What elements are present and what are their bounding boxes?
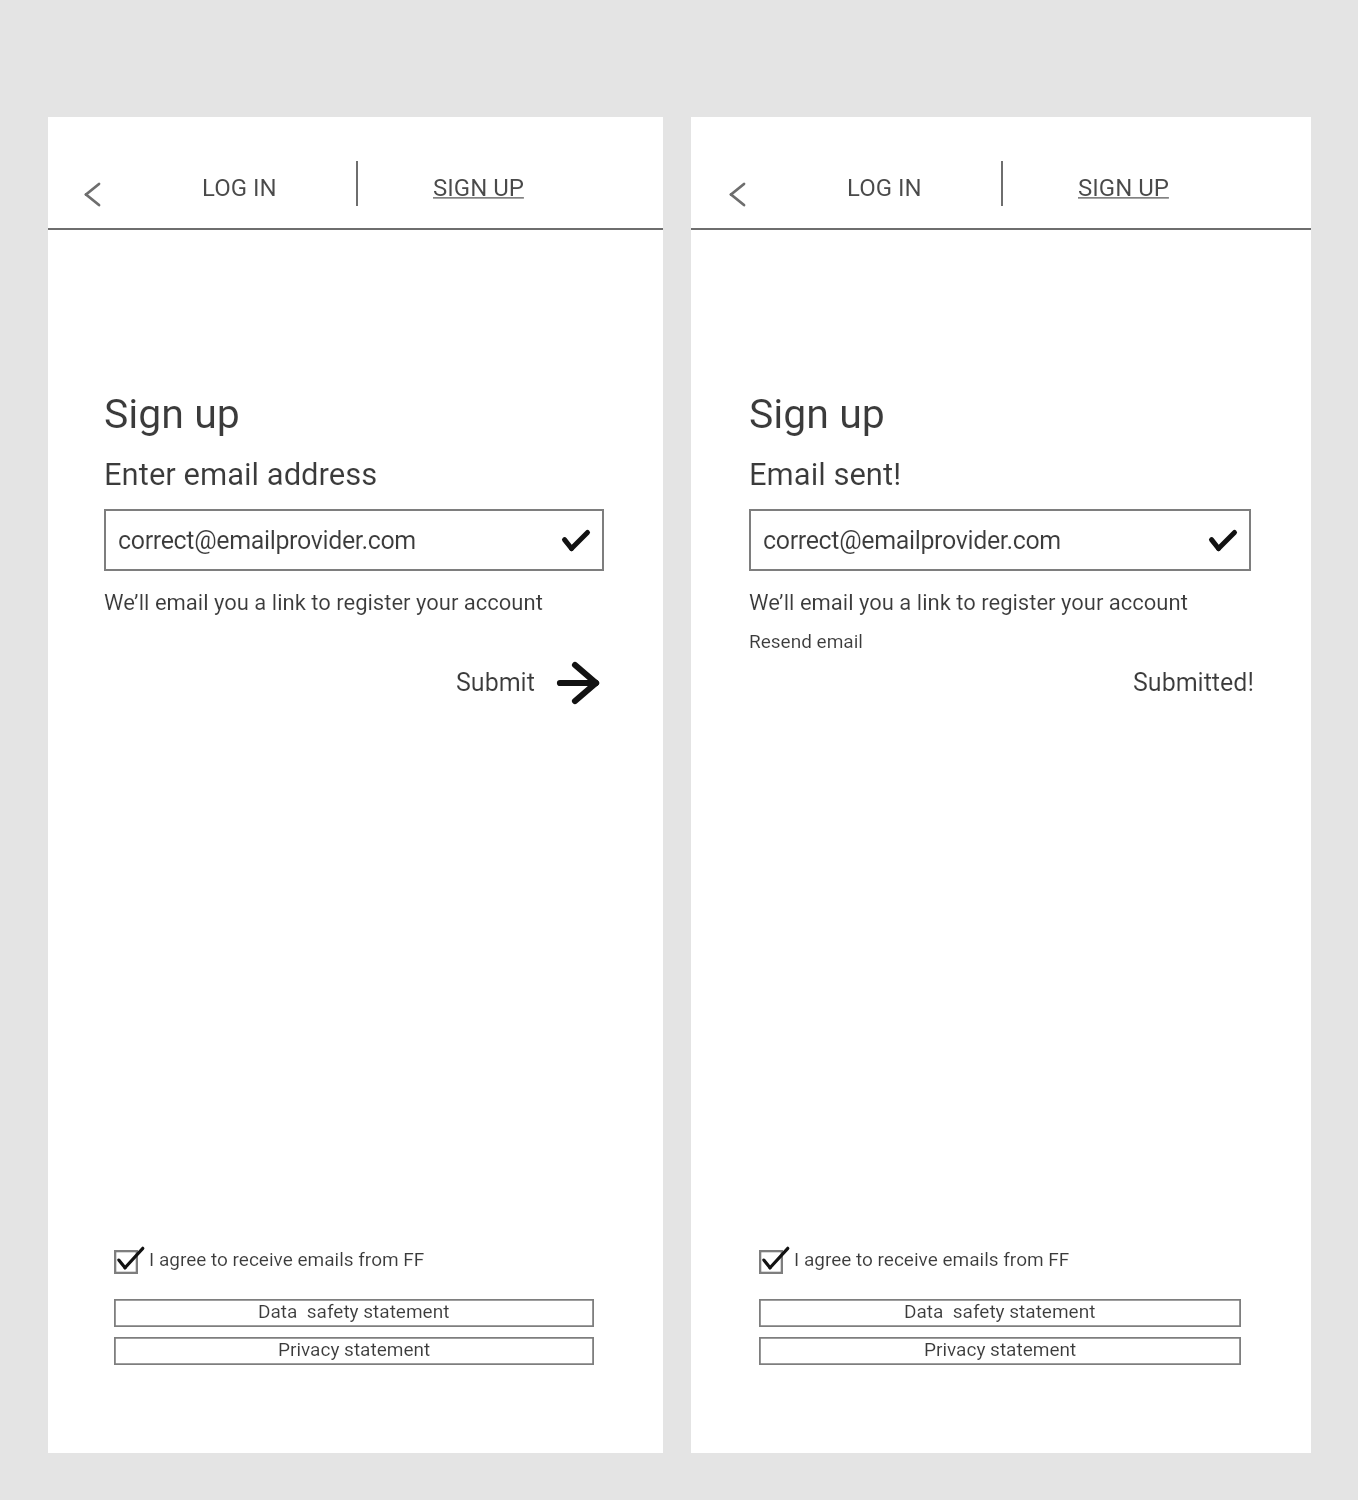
button[interactable]: I agree to receive emails from FF — [759, 1242, 1070, 1282]
staticText: SIGN UP — [1078, 174, 1169, 202]
button[interactable]: Resend email — [749, 630, 863, 652]
staticText: correct@emailprovider.com — [118, 526, 416, 555]
staticText: I agree to receive emails from FF — [149, 1248, 425, 1270]
staticText: Privacy statement — [278, 1338, 431, 1360]
button[interactable]: Back — [716, 173, 758, 215]
staticText: Email sent! — [749, 456, 902, 492]
staticText: Submit — [456, 668, 535, 697]
staticText: Data safety statement — [258, 1300, 450, 1322]
button[interactable]: LOG IN — [189, 165, 289, 211]
staticText: Privacy statement — [924, 1338, 1077, 1360]
staticText: Submitted! — [1133, 668, 1254, 697]
staticText: LOG IN — [847, 174, 922, 202]
staticText: LOG IN — [202, 174, 277, 202]
button[interactable]: Data safety statement — [759, 1299, 1241, 1327]
staticText: Data safety statement — [904, 1300, 1096, 1322]
button[interactable]: Submit — [438, 660, 610, 706]
button[interactable]: Data safety statement — [114, 1299, 594, 1327]
staticText: I agree to receive emails from FF — [794, 1248, 1070, 1270]
button[interactable]: correct@emailprovider.com — [749, 509, 1251, 571]
button[interactable]: Back — [71, 173, 113, 215]
button[interactable]: SIGN UP — [1063, 165, 1183, 211]
staticText: Sign up — [104, 390, 240, 438]
staticText: Sign up — [749, 390, 885, 438]
button[interactable]: Privacy statement — [114, 1337, 594, 1365]
button[interactable]: Privacy statement — [759, 1337, 1241, 1365]
button[interactable]: correct@emailprovider.com — [104, 509, 604, 571]
button[interactable]: SIGN UP — [418, 165, 538, 211]
staticText: SIGN UP — [433, 174, 524, 202]
button[interactable]: LOG IN — [834, 165, 934, 211]
button[interactable]: I agree to receive emails from FF — [114, 1242, 425, 1282]
staticText: Enter email address — [104, 456, 378, 492]
staticText: correct@emailprovider.com — [763, 526, 1061, 555]
staticText: We’ll email you a link to register your … — [104, 590, 543, 616]
staticText: We’ll email you a link to register your … — [749, 590, 1188, 616]
